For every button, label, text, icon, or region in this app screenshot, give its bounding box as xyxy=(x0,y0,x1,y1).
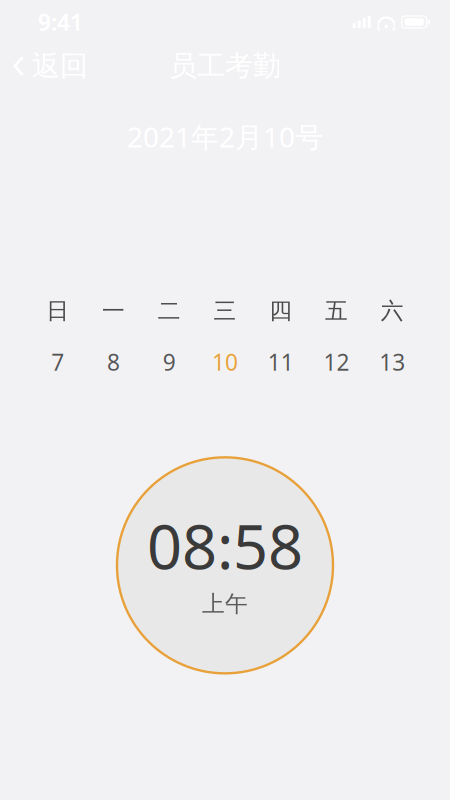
button[interactable]: 10 xyxy=(197,347,253,377)
staticText: 四 xyxy=(269,297,292,325)
staticText: 返回 xyxy=(32,49,88,83)
staticText: 五 xyxy=(325,297,348,325)
staticText: 三 xyxy=(213,297,236,325)
staticText: 六 xyxy=(381,297,404,325)
staticText: 13 xyxy=(379,347,405,377)
staticText: 日 xyxy=(46,297,69,325)
button[interactable]: 8 xyxy=(86,347,141,377)
staticText: 08:58 xyxy=(147,505,303,586)
staticText: 二 xyxy=(158,297,181,325)
button[interactable]: 12 xyxy=(309,347,364,377)
staticText: 12 xyxy=(323,347,349,377)
staticText: 11 xyxy=(268,347,294,377)
staticText: 7 xyxy=(51,347,64,377)
button[interactable]: 11 xyxy=(253,347,309,377)
button[interactable]: 13 xyxy=(364,347,420,377)
staticText: 10 xyxy=(212,347,238,377)
staticText: 9:41 xyxy=(38,7,83,37)
button[interactable]: 7 xyxy=(30,347,86,377)
staticText: 员工考勤 xyxy=(169,49,281,83)
button[interactable]: 9 xyxy=(141,347,197,377)
staticText: 9 xyxy=(163,347,176,377)
staticText: 一 xyxy=(102,297,125,325)
button[interactable]: 返回 xyxy=(0,44,102,88)
staticText: 上午 xyxy=(202,590,248,618)
staticText: 8 xyxy=(107,347,120,377)
staticText: 2021年2月10号 xyxy=(127,118,323,155)
